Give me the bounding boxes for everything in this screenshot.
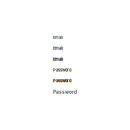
staticText: Password <box>53 68 71 72</box>
staticText: Email <box>53 46 63 51</box>
staticText: Email <box>53 57 63 62</box>
staticText: Email <box>53 35 63 40</box>
staticText: Password <box>53 78 72 83</box>
staticText: Password <box>53 89 77 95</box>
